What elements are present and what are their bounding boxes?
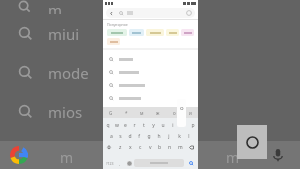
button[interactable]: o [178, 120, 188, 130]
button[interactable]: q [103, 120, 112, 130]
staticText: G [109, 110, 113, 116]
staticText: t [143, 122, 145, 129]
button[interactable] [103, 79, 198, 92]
staticText: s [119, 133, 122, 140]
staticText: mios [48, 102, 83, 122]
button[interactable]: a [107, 131, 116, 141]
button[interactable]: b [155, 142, 165, 152]
button[interactable]: w [112, 120, 121, 130]
button[interactable]: miui [0, 14, 110, 53]
button[interactable]: v [145, 142, 155, 152]
button[interactable]: j [164, 131, 174, 141]
button[interactable]: Backspace [185, 142, 198, 152]
staticText: м [140, 110, 144, 116]
staticText: m [60, 148, 74, 167]
staticText: ?123 [106, 161, 114, 166]
staticText: m [48, 0, 63, 14]
button[interactable]: l [184, 131, 194, 141]
staticText: и [189, 110, 192, 116]
button[interactable]: r [130, 120, 139, 130]
button[interactable] [103, 53, 198, 66]
button[interactable]: Space [134, 159, 184, 167]
staticText: p [191, 122, 195, 129]
staticText: e [124, 122, 127, 129]
staticText: m [226, 148, 240, 167]
button[interactable]: t [139, 120, 148, 130]
button[interactable]: m [0, 0, 110, 14]
staticText: k [178, 133, 181, 140]
button[interactable]: n [165, 142, 175, 152]
staticText: u [161, 122, 165, 129]
button[interactable] [107, 38, 120, 45]
button[interactable]: Home [237, 125, 267, 159]
staticText: m [178, 144, 183, 151]
button[interactable]: f [134, 131, 144, 141]
button[interactable] [107, 29, 127, 36]
button[interactable] [146, 29, 164, 36]
button[interactable]: mode [0, 53, 110, 92]
button[interactable]: m [175, 142, 185, 152]
button[interactable]: G [103, 107, 118, 118]
staticText: , [119, 161, 121, 166]
staticText: h [157, 133, 161, 140]
button[interactable] [129, 29, 144, 36]
staticText: c [139, 144, 142, 151]
staticText: a [110, 133, 113, 140]
staticText: z [119, 144, 122, 151]
staticText: ж [156, 110, 160, 116]
button[interactable]: Voice search [268, 145, 288, 165]
staticText: o [180, 104, 184, 112]
button[interactable]: i [168, 120, 178, 130]
button[interactable]: м [134, 107, 150, 118]
button[interactable]: * [118, 107, 134, 118]
staticText: о [173, 110, 176, 116]
staticText: x [129, 144, 132, 151]
button[interactable]: p [188, 120, 198, 130]
staticText: q [106, 122, 110, 129]
staticText: f [138, 133, 140, 140]
button[interactable]: h [154, 131, 164, 141]
button[interactable]: s [116, 131, 125, 141]
staticText: * [125, 110, 128, 116]
button[interactable] [181, 29, 194, 36]
staticText: i [172, 122, 174, 129]
staticText: y [152, 122, 155, 129]
button[interactable]: ж [150, 107, 166, 118]
button[interactable] [106, 8, 195, 18]
staticText: v [149, 144, 152, 151]
button[interactable] [166, 29, 179, 36]
staticText: mode [48, 63, 89, 83]
button[interactable]: и [182, 107, 198, 118]
button[interactable]: y [148, 120, 158, 130]
button[interactable] [103, 92, 198, 105]
button[interactable]: e [121, 120, 130, 130]
button[interactable] [103, 66, 198, 79]
staticText: w [115, 122, 119, 129]
staticText: o [181, 122, 185, 129]
staticText: n [168, 144, 172, 151]
staticText: j [168, 133, 170, 140]
button[interactable]: z [115, 142, 125, 152]
button[interactable]: Language [124, 157, 134, 169]
button[interactable]: Shift [103, 142, 115, 152]
button[interactable]: g [144, 131, 154, 141]
button[interactable]: x [125, 142, 135, 152]
button[interactable]: mios [0, 92, 110, 131]
staticText: miui [48, 24, 80, 44]
button[interactable]: Google [8, 144, 30, 166]
staticText: r [133, 122, 136, 129]
button[interactable]: k [174, 131, 184, 141]
button[interactable]: Emoji [116, 157, 124, 169]
button[interactable]: c [135, 142, 145, 152]
staticText: d [128, 133, 132, 140]
staticText: g [147, 133, 151, 140]
button[interactable]: ?123 [103, 157, 116, 169]
staticText: b [158, 144, 162, 151]
button[interactable]: d [125, 131, 134, 141]
button[interactable]: о [166, 107, 182, 118]
button[interactable]: Search [184, 157, 198, 169]
staticText: Популярное [107, 22, 128, 27]
button[interactable]: u [158, 120, 168, 130]
staticText: l [188, 133, 190, 140]
